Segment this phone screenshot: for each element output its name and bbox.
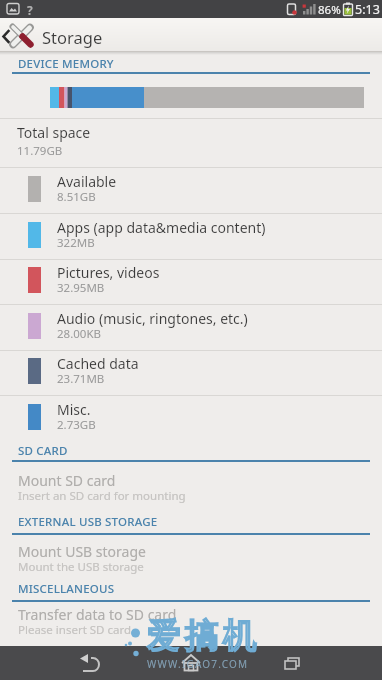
staticText: 86% bbox=[318, 2, 341, 18]
button[interactable]: Mount USB storage bbox=[0, 540, 382, 584]
button[interactable] bbox=[0, 18, 40, 52]
staticText: Total space bbox=[17, 123, 91, 142]
staticText: EXTERNAL USB STORAGE bbox=[18, 514, 158, 530]
button[interactable]: Audio (music, ringtones, etc.) bbox=[0, 305, 382, 351]
staticText: WWW.IGAO7.COM bbox=[147, 657, 249, 671]
staticText: Pictures, videos bbox=[57, 263, 160, 282]
button[interactable] bbox=[74, 646, 108, 680]
staticText: Cached data bbox=[57, 354, 139, 373]
staticText: 322MB bbox=[57, 235, 95, 251]
staticText: Mount USB storage bbox=[18, 542, 146, 561]
button[interactable]: Apps (app data&media content) bbox=[0, 214, 382, 260]
staticText: 2.73GB bbox=[57, 417, 96, 433]
staticText: ? bbox=[27, 2, 33, 18]
staticText: Insert an SD card for mounting bbox=[18, 488, 186, 504]
staticText: Please insert SD card bbox=[18, 622, 132, 638]
staticText: DEVICE MEMORY bbox=[18, 56, 114, 72]
staticText: 5:13 bbox=[355, 1, 380, 18]
staticText: Misc. bbox=[57, 400, 91, 419]
button[interactable] bbox=[276, 646, 310, 680]
staticText: Mount the USB storage bbox=[18, 559, 144, 575]
button[interactable]: Available bbox=[0, 168, 382, 214]
button[interactable]: Misc. bbox=[0, 396, 382, 442]
staticText: Available bbox=[57, 172, 117, 191]
staticText: Apps (app data&media content) bbox=[57, 218, 266, 237]
button[interactable]: Pictures, videos bbox=[0, 259, 382, 305]
button[interactable]: Cached data bbox=[0, 350, 382, 396]
staticText: SD CARD bbox=[18, 443, 68, 459]
staticText: 28.00KB bbox=[57, 326, 101, 342]
button[interactable]: Mount SD card bbox=[0, 469, 382, 513]
staticText: 23.71MB bbox=[57, 371, 105, 387]
staticText: 11.79GB bbox=[17, 143, 63, 159]
staticText: Mount SD card bbox=[18, 471, 116, 490]
button[interactable] bbox=[174, 646, 208, 680]
staticText: 32.95MB bbox=[57, 280, 105, 296]
button[interactable]: Total space bbox=[0, 119, 382, 168]
staticText: Storage bbox=[42, 26, 103, 48]
staticText: Audio (music, ringtones, etc.) bbox=[57, 309, 248, 328]
staticText: MISCELLANEOUS bbox=[18, 581, 115, 597]
button[interactable]: Transfer data to SD card bbox=[0, 603, 382, 647]
staticText: 爱搞机 bbox=[145, 614, 259, 657]
staticText: Transfer data to SD card bbox=[18, 605, 177, 624]
staticText: 8.51GB bbox=[57, 189, 96, 205]
